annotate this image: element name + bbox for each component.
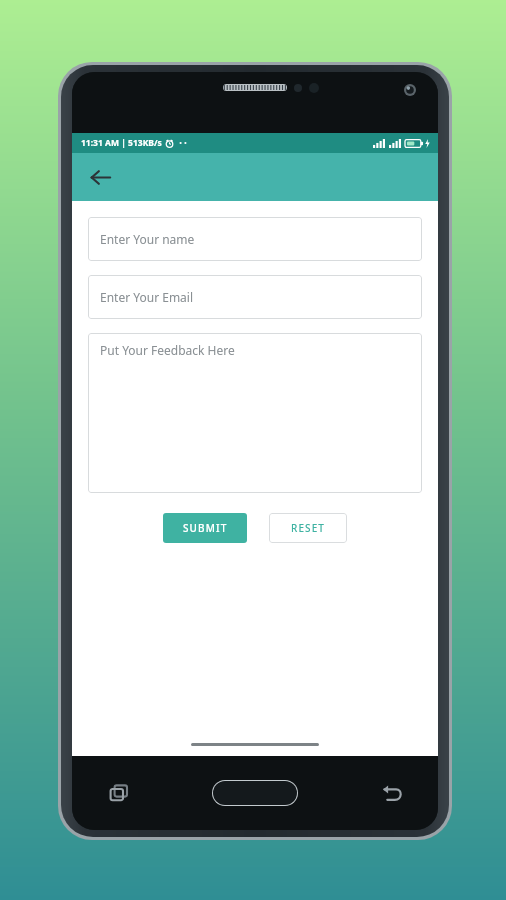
- staticText: 11:31 AM | 513KB/s: [81, 137, 162, 149]
- button[interactable]: SUBMIT: [163, 513, 247, 543]
- button[interactable]: Navigate up: [80, 157, 120, 197]
- staticText: Put Your Feedback Here: [100, 342, 235, 358]
- button[interactable]: Put Your Feedback Here: [88, 333, 422, 493]
- staticText: RESET: [291, 521, 326, 535]
- button[interactable]: Enter Your name: [88, 217, 422, 261]
- staticText: Enter Your name: [100, 231, 195, 247]
- staticText: Enter Your Email: [100, 289, 194, 305]
- button[interactable]: Recent apps: [102, 776, 136, 810]
- button[interactable]: RESET: [269, 513, 347, 543]
- button[interactable]: Home: [212, 780, 298, 806]
- staticText: SUBMIT: [183, 521, 228, 535]
- button[interactable]: Enter Your Email: [88, 275, 422, 319]
- button[interactable]: Back: [374, 776, 408, 810]
